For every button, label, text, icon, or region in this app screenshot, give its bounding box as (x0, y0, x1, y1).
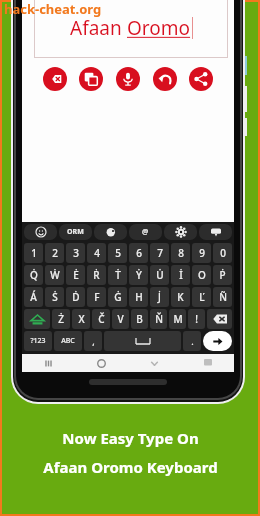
staticText: 4 (94, 246, 100, 260)
staticText: J̇ (158, 290, 161, 304)
staticText: . (191, 335, 194, 347)
button[interactable]: Ẏ (129, 265, 148, 285)
button[interactable]: ORM (59, 224, 92, 240)
button[interactable]: Undo (153, 67, 177, 91)
staticText: V (117, 312, 124, 326)
button[interactable]: Ḋ (66, 287, 85, 307)
staticText: Ḋ (72, 290, 80, 304)
button[interactable]: 8 (171, 243, 190, 263)
staticText: 9 (199, 246, 205, 260)
staticText: K (177, 290, 184, 304)
button[interactable]: Share (189, 67, 213, 91)
staticText: F (94, 290, 100, 304)
staticText: Č (98, 312, 105, 326)
button[interactable]: Settings (164, 224, 197, 240)
staticText: Afaan Oromo Keyboard (43, 457, 218, 477)
button[interactable]: O (192, 265, 211, 285)
button[interactable]: B (131, 309, 148, 329)
staticText: Ṫ (115, 268, 121, 282)
button[interactable]: Ľ (192, 287, 211, 307)
staticText: Ṗ (219, 268, 226, 282)
staticText: O (198, 268, 206, 282)
staticText: ABC (61, 336, 75, 346)
button[interactable]: Switch keyboard (181, 354, 234, 372)
staticText: H (135, 290, 143, 304)
staticText: B (136, 312, 143, 326)
button[interactable]: Ġ (108, 287, 127, 307)
button[interactable]: K (171, 287, 190, 307)
button[interactable]: V (112, 309, 129, 329)
staticText: İ (179, 268, 183, 282)
button[interactable]: Ṙ (87, 265, 106, 285)
button[interactable]: @ (129, 224, 162, 240)
button[interactable]: Ė (66, 265, 85, 285)
staticText: M (173, 312, 183, 326)
staticText: 7 (157, 246, 163, 260)
button[interactable]: H (129, 287, 148, 307)
button[interactable]: Ñ (213, 287, 232, 307)
button[interactable]: Ň (150, 309, 167, 329)
button[interactable]: F (87, 287, 106, 307)
staticText: 3 (73, 246, 79, 260)
button[interactable]: Backspace (207, 309, 232, 329)
staticText: Ň (155, 312, 163, 326)
staticText: 0 (220, 246, 226, 260)
staticText: Ẏ (136, 268, 142, 282)
button[interactable]: 9 (192, 243, 211, 263)
button[interactable]: Afaan (34, 0, 228, 58)
button[interactable]: 2 (45, 243, 64, 263)
button[interactable]: 3 (66, 243, 85, 263)
button[interactable]: Hide keyboard (128, 354, 181, 372)
staticText: Ṡ (52, 290, 58, 304)
button[interactable]: Emoji (24, 224, 57, 240)
button[interactable]: Recents (22, 354, 75, 372)
button[interactable]: Ẇ (45, 265, 64, 285)
button[interactable]: Voice input (116, 67, 140, 91)
button[interactable]: Home (75, 354, 128, 372)
staticText: Á (30, 290, 37, 304)
staticText: 1 (31, 246, 37, 260)
staticText: Now Easy Type On (62, 428, 199, 448)
button[interactable]: Č (92, 309, 110, 329)
button[interactable]: Ṡ (45, 287, 64, 307)
button[interactable]: Space (104, 331, 181, 351)
button[interactable]: J̇ (150, 287, 169, 307)
button[interactable]: Copy (79, 67, 103, 91)
button[interactable]: İ (171, 265, 190, 285)
staticText: Ż (58, 312, 64, 326)
button[interactable]: Shift (24, 309, 50, 329)
button[interactable]: 5 (108, 243, 127, 263)
button[interactable]: 4 (87, 243, 106, 263)
button[interactable]: 1 (24, 243, 43, 263)
button[interactable]: Clear (43, 67, 67, 91)
staticText: Ñ (219, 290, 227, 304)
button[interactable]: Ż (52, 309, 70, 329)
staticText: 8 (178, 246, 184, 260)
button[interactable]: , (84, 331, 102, 351)
staticText: 5 (115, 246, 121, 260)
button[interactable]: M (169, 309, 186, 329)
staticText: ! (195, 312, 198, 326)
button[interactable]: . (183, 331, 201, 351)
staticText: , (92, 335, 95, 347)
button[interactable]: ?123 (24, 331, 52, 351)
button[interactable]: 7 (150, 243, 169, 263)
button[interactable]: X (72, 309, 90, 329)
button[interactable]: Q̇ (24, 265, 43, 285)
staticText: Ġ (114, 290, 122, 304)
staticText: U̇ (156, 268, 164, 282)
button[interactable]: Á (24, 287, 43, 307)
button[interactable]: ABC (54, 331, 82, 351)
button[interactable]: Keyboard (199, 224, 232, 240)
button[interactable]: 6 (129, 243, 148, 263)
button[interactable]: ! (188, 309, 205, 329)
button[interactable]: Enter (203, 331, 232, 351)
button[interactable]: U̇ (150, 265, 169, 285)
button[interactable]: Ṗ (213, 265, 232, 285)
button[interactable]: 0 (213, 243, 232, 263)
staticText: @ (142, 227, 149, 237)
button[interactable]: Theme (94, 224, 127, 240)
staticText: Ṙ (93, 268, 100, 282)
staticText: hack-cheat.org (4, 0, 102, 18)
button[interactable]: Ṫ (108, 265, 127, 285)
